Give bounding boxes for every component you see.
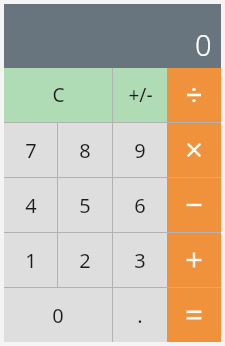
button[interactable]: Equals (167, 288, 221, 342)
staticText: 5 (79, 192, 91, 219)
staticText: 0 (195, 25, 212, 64)
staticText: 0 (52, 302, 64, 329)
button[interactable]: 9 (113, 123, 167, 177)
staticText: 4 (25, 192, 37, 219)
button[interactable]: 1 (4, 233, 57, 287)
button[interactable]: . (113, 288, 167, 342)
button[interactable]: Divide (167, 68, 221, 122)
button[interactable]: 4 (4, 178, 57, 232)
button[interactable]: 3 (113, 233, 167, 287)
staticText: C (52, 82, 65, 108)
staticText: 3 (134, 247, 146, 274)
button[interactable]: Plus (167, 233, 221, 287)
staticText: 2 (79, 247, 91, 274)
button[interactable]: Minus (167, 178, 221, 232)
staticText: +/- (128, 82, 153, 108)
button[interactable]: 8 (58, 123, 112, 177)
button[interactable]: 7 (4, 123, 57, 177)
staticText: 8 (79, 137, 91, 164)
staticText: . (137, 302, 143, 329)
button[interactable]: 0 (4, 288, 112, 342)
staticText: 1 (25, 247, 37, 274)
staticText: 6 (134, 192, 146, 219)
button[interactable]: 0 (4, 4, 221, 68)
button[interactable]: 5 (58, 178, 112, 232)
button[interactable]: Multiply (167, 123, 221, 177)
button[interactable]: +/- (113, 68, 167, 122)
button[interactable]: 2 (58, 233, 112, 287)
staticText: 9 (134, 137, 146, 164)
button[interactable]: C (4, 68, 112, 122)
staticText: 7 (25, 137, 37, 164)
button[interactable]: 6 (113, 178, 167, 232)
